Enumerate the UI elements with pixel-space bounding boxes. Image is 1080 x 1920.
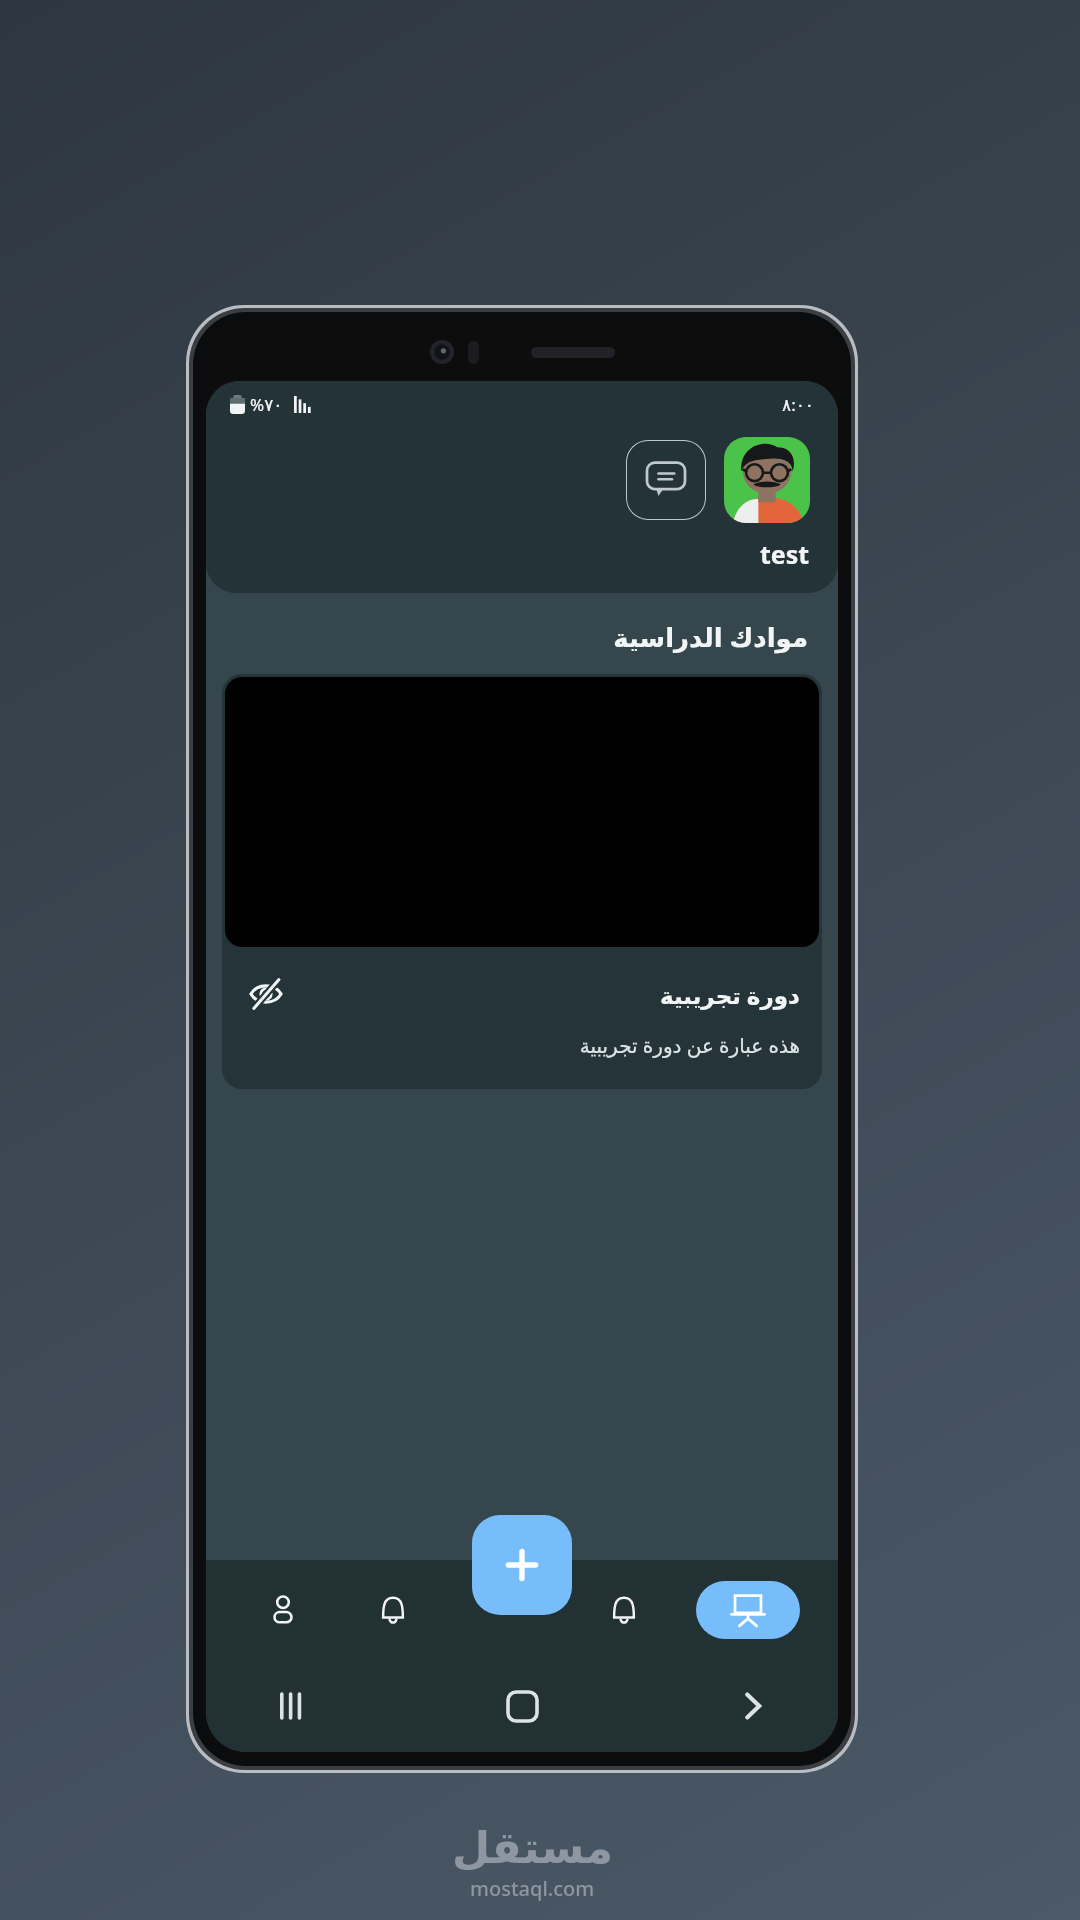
staticText: موادك الدراسية [206, 619, 808, 654]
staticText: mostaql.com [470, 1875, 595, 1902]
button[interactable]: Add [472, 1515, 572, 1615]
staticText: دورة تجريبية [660, 979, 800, 1010]
staticText: test [760, 537, 810, 571]
button[interactable]: Back [726, 1680, 778, 1732]
button[interactable]: Notifications [338, 1560, 448, 1660]
button[interactable]: Alerts [569, 1560, 679, 1660]
button[interactable]: Hidden [244, 972, 288, 1016]
button[interactable]: Messages [626, 440, 706, 520]
button[interactable]: Home [496, 1680, 548, 1732]
staticText: هذه عبارة عن دورة تجريبية [222, 1032, 800, 1059]
staticText: %٧٠ [250, 393, 283, 416]
button[interactable]: Recents [266, 1680, 318, 1732]
button[interactable]: Profile [724, 437, 810, 523]
staticText: مستقل [452, 1822, 613, 1873]
button[interactable]: Hidden [222, 674, 822, 1089]
button[interactable]: Profile [228, 1560, 338, 1660]
button[interactable]: Courses [696, 1581, 800, 1639]
staticText: ٨:٠٠ [782, 393, 814, 416]
